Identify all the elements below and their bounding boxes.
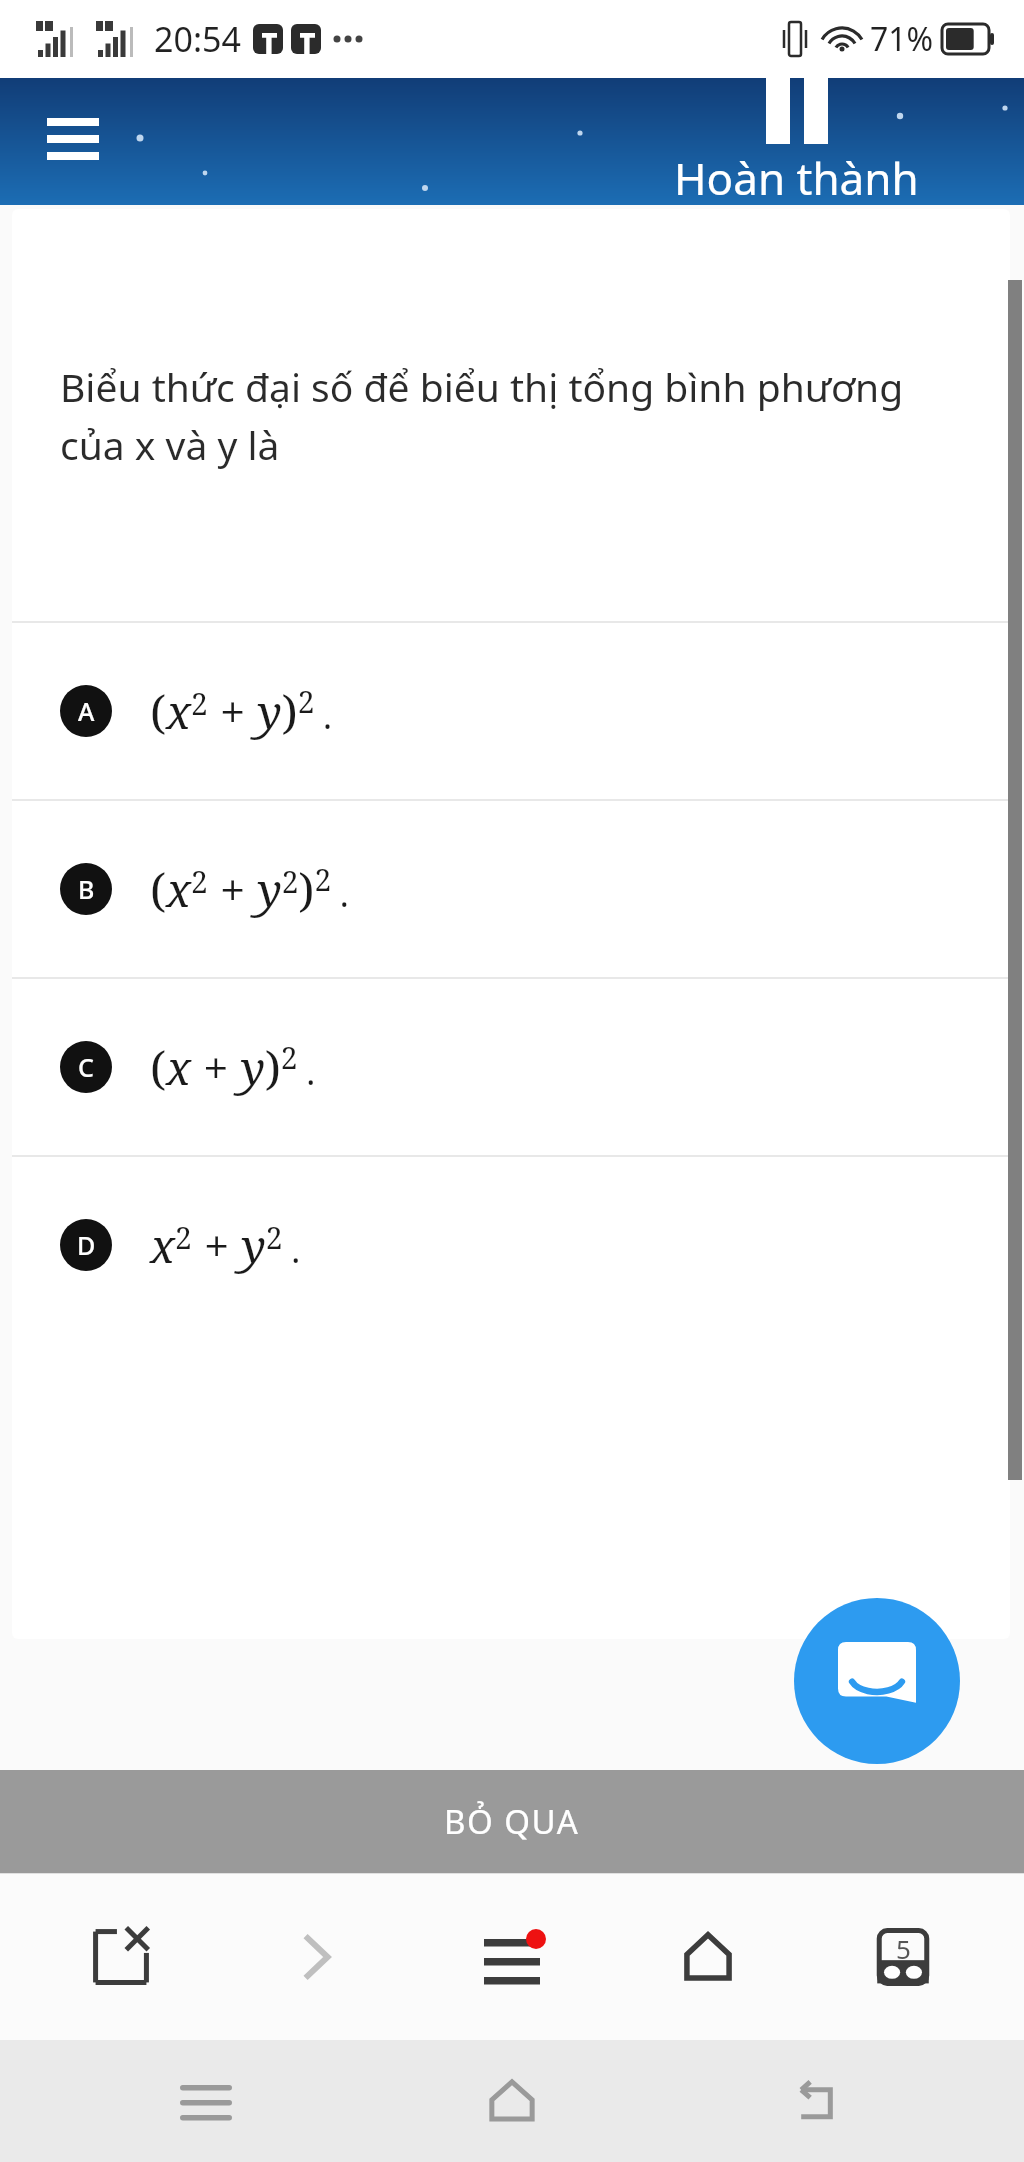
button[interactable]: Close tab — [46, 1873, 196, 2040]
button[interactable]: Forward — [241, 1873, 391, 2040]
button[interactable]: A — [12, 623, 1010, 799]
staticText: D — [77, 1228, 96, 1262]
button[interactable]: BỎ QUA — [0, 1770, 1024, 1873]
staticText: Biểu thức đại số để biểu thị tổng bình p… — [60, 360, 904, 471]
staticText: x2 + y2 . — [150, 1214, 300, 1277]
button[interactable]: B — [12, 801, 1010, 977]
staticText: 5 — [896, 1931, 911, 1966]
staticText: Hoàn thành — [674, 148, 919, 205]
button[interactable]: Tabs — [828, 1873, 978, 2040]
button[interactable]: C — [12, 979, 1010, 1155]
staticText: (x2 + y)2 . — [150, 680, 332, 743]
button[interactable]: Home — [633, 1873, 783, 2040]
button[interactable]: Menu — [437, 1873, 587, 2040]
staticText: BỎ QUA — [444, 1799, 580, 1844]
button[interactable]: Menu — [28, 102, 118, 182]
staticText: 20:54 — [154, 16, 241, 62]
button[interactable]: D — [12, 1157, 1010, 1333]
staticText: (x + y)2 . — [150, 1036, 315, 1099]
button[interactable]: Home — [412, 2040, 612, 2162]
staticText: (x2 + y2)2 . — [150, 858, 349, 921]
staticText: C — [78, 1050, 94, 1084]
button[interactable]: Back — [718, 2040, 918, 2162]
staticText: B — [78, 872, 95, 906]
staticText: A — [78, 694, 95, 728]
staticText: 71% — [870, 17, 934, 61]
button[interactable]: Chat — [794, 1598, 960, 1764]
button[interactable]: Hoàn thành — [674, 78, 919, 205]
button[interactable]: Recents — [106, 2040, 306, 2162]
